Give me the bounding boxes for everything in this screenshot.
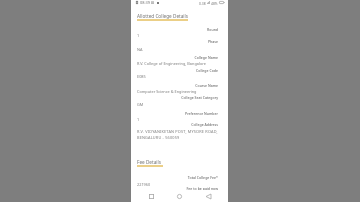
button[interactable]: Total College Fee* <box>131 175 228 180</box>
staticText: Computer Science & Engineering <box>137 89 228 94</box>
button[interactable]: College Seat Category <box>131 95 228 100</box>
staticText: Round <box>131 27 218 32</box>
staticText: R.V. VIDYANIKETAN POST, MYSORE ROAD, <box>137 129 228 134</box>
button[interactable]: College Code <box>131 68 228 73</box>
button[interactable]: Recent apps <box>144 190 158 202</box>
button[interactable]: Preference Number <box>131 111 228 116</box>
staticText: 0.38 <box>199 1 206 5</box>
staticText: Fee to be paid now <box>131 186 218 191</box>
staticText: College Address <box>131 122 218 127</box>
button[interactable]: Back <box>201 190 215 202</box>
button[interactable]: College Address <box>131 122 228 127</box>
staticText: 1 <box>137 117 228 122</box>
staticText: NA <box>137 47 228 52</box>
staticText: E085 <box>137 74 228 79</box>
staticText: College Name <box>131 55 218 60</box>
staticText: Fee Details <box>137 159 161 165</box>
button[interactable]: Phase <box>131 39 228 44</box>
button[interactable]: Course Name <box>131 83 228 88</box>
staticText: Phase <box>131 39 218 44</box>
staticText: 08:39 <box>140 0 150 5</box>
staticText: College Seat Category <box>131 95 218 100</box>
button[interactable]: Round <box>131 27 228 32</box>
button[interactable]: Fee to be paid now <box>131 186 228 191</box>
staticText: GM <box>137 102 228 107</box>
button[interactable]: Home <box>172 190 186 202</box>
staticText: 1 <box>137 33 228 38</box>
staticText: Preference Number <box>131 111 218 116</box>
button[interactable]: College Name <box>131 55 228 60</box>
staticText: Course Name <box>131 83 218 88</box>
staticText: College Code <box>131 68 218 73</box>
staticText: Allotted College Details <box>137 13 189 19</box>
staticText: R.V. College of Engineering, Bangalore <box>137 61 228 66</box>
staticText: Total College Fee* <box>131 175 218 180</box>
staticText: 221960 <box>137 182 228 187</box>
staticText: 48% <box>211 1 218 5</box>
staticText: BENGALURU - 560059 <box>137 135 228 140</box>
